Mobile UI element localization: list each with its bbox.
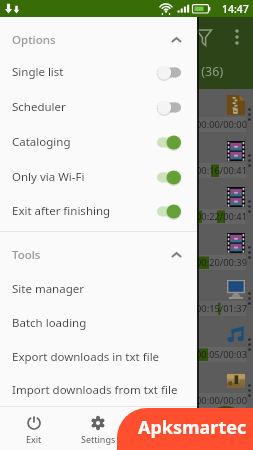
staticText: 00:16/00:41 — [196, 164, 247, 177]
button[interactable]: Exit after finishing — [0, 194, 197, 228]
button[interactable]: Only via Wi-Fi — [0, 160, 197, 194]
button[interactable]: Item menu — [245, 244, 253, 261]
staticText: Cataloging — [12, 134, 71, 150]
staticText: Settings — [81, 433, 116, 445]
staticText: 00:20/00:39 — [196, 256, 247, 269]
button[interactable]: Import downloads from txt file — [0, 373, 197, 407]
staticText: 14:47 — [222, 2, 249, 16]
button[interactable]: Settings — [66, 410, 130, 450]
button[interactable]: Item menu — [245, 198, 253, 215]
button[interactable]: Scheduler — [0, 90, 197, 124]
button[interactable]: Item menu — [0, 135, 253, 181]
button[interactable]: Item menu — [0, 273, 253, 319]
staticText: Site manager — [12, 281, 84, 297]
button[interactable]: Add download — [206, 406, 246, 446]
button[interactable]: Exit — [2, 410, 66, 450]
button[interactable]: More options — [224, 24, 250, 50]
staticText: Tools — [12, 247, 41, 263]
button[interactable]: Cataloging — [0, 125, 197, 159]
button[interactable]: Item menu — [0, 365, 253, 411]
button[interactable]: Site manager — [0, 272, 197, 306]
button[interactable]: Options — [0, 23, 197, 57]
button[interactable]: Item menu — [0, 411, 253, 450]
button[interactable]: Batch loading — [0, 306, 197, 340]
button[interactable]: Export downloads in txt file — [0, 340, 197, 374]
staticText: 00:00/00:00 — [196, 394, 247, 407]
staticText: Downloading (36) — [120, 63, 224, 80]
button[interactable]: Tools — [0, 238, 197, 272]
staticText: Only via Wi-Fi — [12, 169, 85, 185]
button[interactable]: Item menu — [245, 382, 253, 399]
staticText: 00:05/00:03 — [196, 348, 247, 361]
button[interactable]: Item menu — [245, 290, 253, 307]
button[interactable]: Item menu — [0, 181, 253, 227]
staticText: Exit after finishing — [12, 203, 111, 219]
button[interactable]: Item menu — [0, 227, 253, 273]
button[interactable]: Single list — [0, 55, 197, 89]
button[interactable]: Item menu — [245, 152, 253, 169]
staticText: Apksmartec — [138, 415, 247, 440]
staticText: 00:00/00:00 — [196, 118, 247, 131]
button[interactable]: Item menu — [0, 319, 253, 365]
button[interactable]: Filter — [191, 24, 217, 50]
staticText: Export downloads in txt file — [12, 349, 160, 365]
staticText: 00:22/00:41 — [196, 210, 247, 223]
button[interactable]: Item menu — [245, 428, 253, 445]
button[interactable]: Item menu — [245, 336, 253, 353]
staticText: Batch loading — [12, 315, 87, 331]
staticText: Options — [12, 32, 56, 48]
staticText: Exit — [26, 433, 42, 445]
staticText: 00:15/01:37 — [196, 302, 247, 315]
staticText: Import downloads from txt file — [12, 382, 178, 398]
button[interactable]: Item menu — [0, 89, 253, 135]
button[interactable]: Item menu — [245, 106, 253, 123]
staticText: Single list — [12, 64, 64, 80]
staticText: Scheduler — [12, 99, 66, 115]
